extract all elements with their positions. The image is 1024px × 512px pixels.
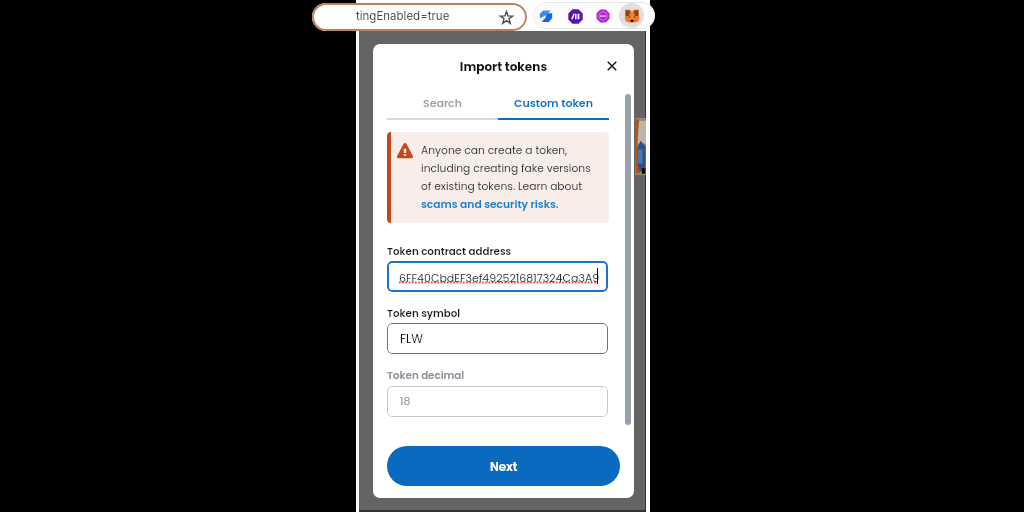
staticText: Next bbox=[490, 458, 518, 475]
button[interactable]: MetaMask extension bbox=[619, 3, 644, 28]
staticText: Anyone can create a token, including cre… bbox=[421, 143, 591, 212]
button[interactable]: Search bbox=[387, 89, 498, 115]
button[interactable]: FLW bbox=[387, 323, 608, 354]
staticText: 6FF40CbdEF3ef4925216817324Ca3A9 bbox=[399, 270, 600, 285]
staticText: FLW bbox=[400, 330, 423, 347]
button[interactable]: Extension bbox=[595, 8, 611, 24]
button[interactable]: Close bbox=[602, 56, 622, 76]
button[interactable]: Extension bbox=[567, 8, 583, 24]
staticText: Custom token bbox=[514, 95, 593, 110]
button[interactable]: Next bbox=[387, 446, 620, 486]
staticText: 18 bbox=[400, 393, 411, 408]
staticText: Import tokens bbox=[373, 58, 634, 75]
button[interactable]: 6FF40CbdEF3ef4925216817324Ca3A9 bbox=[387, 261, 608, 292]
button[interactable]: Extension bbox=[538, 8, 554, 24]
staticText: Token contract address bbox=[387, 244, 512, 258]
staticText: Search bbox=[423, 95, 462, 110]
button[interactable]: Custom token bbox=[498, 89, 609, 115]
button[interactable]: Anyone can create a token, including cre… bbox=[421, 143, 609, 212]
staticText: Token symbol bbox=[387, 306, 461, 320]
staticText: tingEnabled=true bbox=[356, 9, 450, 23]
button[interactable]: Bookmark this page bbox=[497, 8, 515, 26]
staticText: Token decimal bbox=[387, 368, 465, 382]
button[interactable] bbox=[312, 3, 527, 31]
